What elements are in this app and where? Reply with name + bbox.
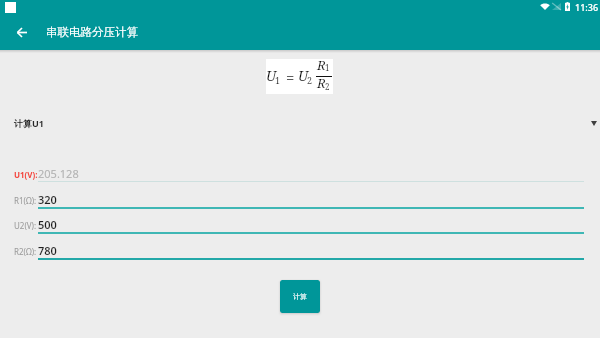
staticText: R xyxy=(317,56,326,74)
button[interactable]: 计算U1 xyxy=(0,108,600,140)
staticText: 205.128 xyxy=(38,166,79,181)
button[interactable]: R2(Ω): xyxy=(0,243,600,266)
staticText: 320 xyxy=(38,192,57,207)
staticText: 计算U1 xyxy=(14,117,44,129)
staticText: 计算 xyxy=(293,292,307,301)
button[interactable]: Back xyxy=(8,18,36,46)
staticText: R xyxy=(317,74,326,92)
staticText: 2 xyxy=(307,74,313,86)
staticText: 780 xyxy=(38,243,57,258)
staticText: U2(V): xyxy=(14,220,37,231)
staticText: U xyxy=(266,66,277,85)
button[interactable]: U1(V): xyxy=(0,166,600,189)
staticText: 1 xyxy=(275,74,281,86)
staticText: U xyxy=(298,66,309,85)
staticText: 2 xyxy=(325,81,330,92)
staticText: 1 xyxy=(325,62,330,73)
staticText: 串联电路分压计算 xyxy=(46,25,138,39)
staticText: U1(V): xyxy=(14,169,38,180)
staticText: R2(Ω): xyxy=(14,246,37,257)
button[interactable]: 计算 xyxy=(280,280,320,313)
staticText: 11:36 xyxy=(575,1,599,13)
button[interactable]: U2(V): xyxy=(0,217,600,240)
staticText: R1(Ω): xyxy=(14,195,37,206)
staticText: = xyxy=(286,67,295,87)
button[interactable]: R1(Ω): xyxy=(0,192,600,215)
staticText: 500 xyxy=(38,217,57,232)
